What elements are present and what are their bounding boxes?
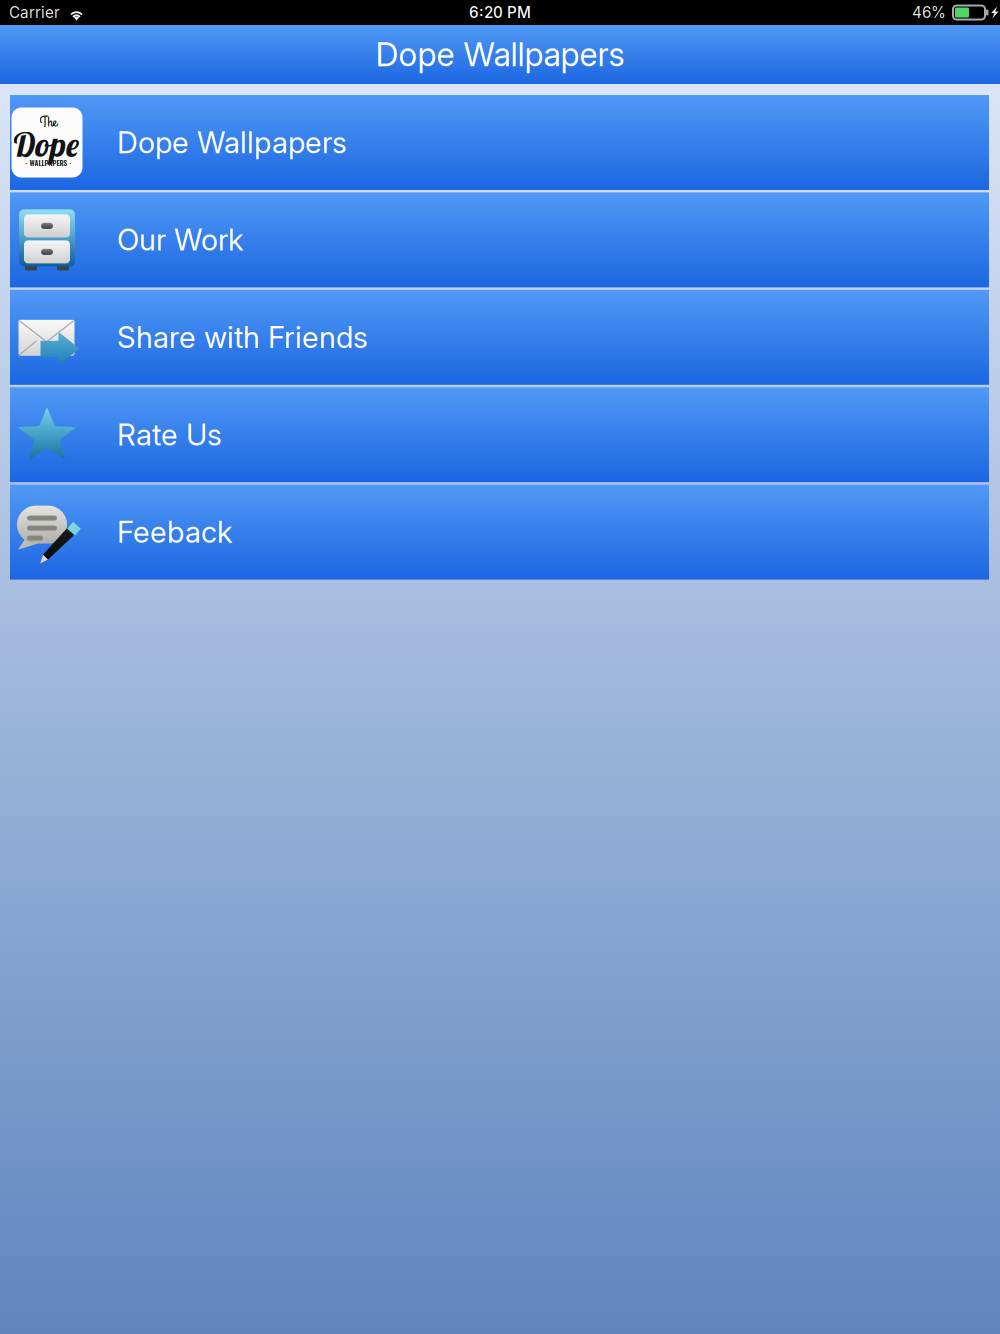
staticText: 6:20 PM — [469, 3, 531, 22]
staticText: Share with Friends — [117, 319, 368, 355]
button[interactable]: The — [10, 95, 989, 190]
button[interactable]: Share with Friends — [10, 290, 989, 385]
staticText: Dope — [13, 123, 78, 165]
staticText: The — [39, 112, 56, 132]
staticText: Dope Wallpapers — [375, 35, 624, 74]
staticText: Our Work — [117, 222, 244, 258]
staticText: Feeback — [117, 514, 233, 550]
staticText: Carrier — [9, 3, 60, 22]
staticText: Rate Us — [117, 417, 222, 452]
staticText: · WALLPAPERS · — [25, 157, 71, 168]
button[interactable]: Feeback — [10, 485, 989, 580]
staticText: Dope Wallpapers — [117, 125, 347, 160]
button[interactable]: Rate Us — [10, 387, 989, 482]
staticText: 46% — [912, 3, 946, 22]
button[interactable]: Our Work — [10, 192, 989, 287]
